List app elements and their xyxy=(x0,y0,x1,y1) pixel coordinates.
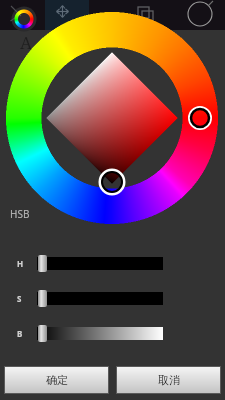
button[interactable]: Transform xyxy=(45,0,89,30)
staticText: S xyxy=(17,293,22,304)
button[interactable]: Color xyxy=(10,5,38,33)
button[interactable]: Layers xyxy=(137,6,155,24)
button[interactable]: 取消 xyxy=(117,367,220,393)
staticText: HSB xyxy=(10,207,30,221)
button[interactable]: 确定 xyxy=(5,367,108,393)
staticText: A xyxy=(20,31,32,54)
button[interactable]: B xyxy=(0,323,225,343)
staticText: 取消 xyxy=(158,373,180,387)
button[interactable]: Brush size xyxy=(186,0,214,28)
staticText: H xyxy=(17,258,24,269)
staticText: 确定 xyxy=(46,373,68,387)
button[interactable]: S xyxy=(0,288,225,308)
staticText: B xyxy=(17,328,23,339)
button[interactable]: H xyxy=(0,253,225,273)
